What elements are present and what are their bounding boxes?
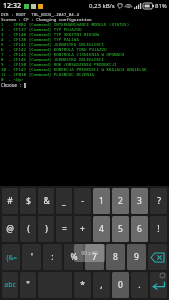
- button[interactable]: 3: [131, 188, 148, 214]
- staticText: -: [81, 195, 84, 207]
- staticText: Choose :: [1, 82, 23, 88]
- staticText: 6 - CF142 [Command] KONTROLA TONU POJAZD…: [1, 47, 107, 52]
- button[interactable]: 4: [93, 216, 110, 242]
- staticText: ,: [100, 279, 103, 291]
- button[interactable]: Backspace: [148, 244, 167, 270]
- staticText: 5 - CF141 [Command] JEDNOSTKA ODLEGLOSCI: [1, 42, 105, 47]
- staticText: 81%: [155, 2, 167, 10]
- button[interactable]: 1: [93, 188, 110, 214]
- button[interactable]: !: [150, 216, 167, 242]
- staticText: 11 - CF010 [Command] PLOSNOSC RCZENIA: [1, 72, 94, 77]
- button[interactable]: =: [56, 216, 72, 242]
- button[interactable]: 2: [112, 188, 129, 214]
- staticText: ': [31, 251, 33, 263]
- staticText: 0 - <Up>: [1, 77, 24, 82]
- button[interactable]: {&=: [2, 244, 20, 270]
- staticText: DIR : ROOT TBL_BIOS_.2047_04.4: [1, 12, 79, 17]
- staticText: 2 - CF137 [Command] TYP POJAZDU: [1, 27, 82, 32]
- staticText: 0,23 kB/s: [89, 2, 115, 10]
- staticText: Screen : CF : Changing configuration: [1, 17, 92, 22]
- staticText: 4 - CF138 [Command] TYP PALIWA: [1, 37, 79, 42]
- button[interactable]: ): [38, 216, 54, 242]
- button[interactable]: :: [43, 244, 62, 270]
- staticText: 7: [92, 251, 97, 263]
- button[interactable]: 6: [131, 216, 148, 242]
- staticText: 8 - CF146 [Command] JEDNOSTKA ODLEGLOSCI: [1, 57, 105, 62]
- staticText: #: [7, 195, 13, 207]
- staticText: *: [80, 279, 85, 291]
- button[interactable]: (: [20, 216, 36, 242]
- staticText: :: [51, 251, 54, 263]
- staticText: %: [70, 251, 78, 263]
- staticText: 4: [99, 223, 104, 235]
- staticText: abc: [4, 280, 16, 290]
- button[interactable]: $: [20, 188, 36, 214]
- staticText: &: [43, 195, 50, 207]
- button[interactable]: #: [2, 188, 18, 214]
- staticText: 8: [113, 251, 118, 263]
- staticText: 10 - CF147 [Command] KOREKCJA PREDKOSCI …: [1, 67, 147, 72]
- staticText: !: [157, 223, 160, 235]
- staticText: 1: [99, 195, 104, 207]
- button[interactable]: .: [131, 272, 148, 298]
- staticText: 9 - CF150 [Command] ROK /OBSADZENIA PROD…: [1, 62, 117, 67]
- staticText: 90 x 39: [81, 250, 98, 257]
- staticText: 7 - CF145 [Command] KONTROLA CISNIENIA W…: [1, 52, 125, 57]
- staticText: 2: [118, 195, 123, 207]
- button[interactable]: +: [74, 216, 91, 242]
- button[interactable]: ": [20, 272, 36, 298]
- staticText: 5: [118, 223, 123, 235]
- button[interactable]: 9: [127, 244, 146, 270]
- button[interactable]: 0: [112, 272, 129, 298]
- staticText: 3 - CF140 [Command] TYP SKRZYNI BIEGOW: [1, 32, 99, 37]
- button[interactable]: @: [2, 216, 18, 242]
- staticText: ": [26, 279, 30, 291]
- button[interactable]: 7: [85, 244, 104, 270]
- button[interactable]: &: [38, 188, 54, 214]
- staticText: _: [62, 195, 66, 207]
- button[interactable]: ': [22, 244, 41, 270]
- button[interactable]: _: [56, 188, 72, 214]
- button[interactable]: -: [74, 188, 91, 214]
- staticText: (: [27, 223, 30, 235]
- button[interactable]: 8: [106, 244, 125, 270]
- button[interactable]: *: [74, 272, 91, 298]
- button[interactable]: Enter: [150, 272, 167, 298]
- staticText: .: [138, 279, 141, 291]
- staticText: ): [45, 223, 48, 235]
- staticText: 1 - CF002 [Command] INTERNANCHANCE MODUL…: [1, 22, 130, 27]
- staticText: {&=: [6, 253, 17, 262]
- staticText: +: [80, 223, 85, 235]
- staticText: $: [26, 195, 31, 207]
- button[interactable]: 5: [112, 216, 129, 242]
- staticText: 0: [118, 279, 123, 291]
- staticText: 12:32: [3, 1, 21, 11]
- button[interactable]: abc: [2, 272, 18, 298]
- button[interactable]: ?: [150, 188, 167, 214]
- staticText: @: [6, 223, 14, 235]
- staticText: =: [62, 223, 67, 235]
- staticText: 6: [137, 223, 142, 235]
- staticText: 3: [137, 195, 142, 207]
- button[interactable]: %: [64, 244, 83, 270]
- button[interactable]: ,: [93, 272, 110, 298]
- staticText: 9: [134, 251, 139, 263]
- staticText: ?: [157, 195, 161, 207]
